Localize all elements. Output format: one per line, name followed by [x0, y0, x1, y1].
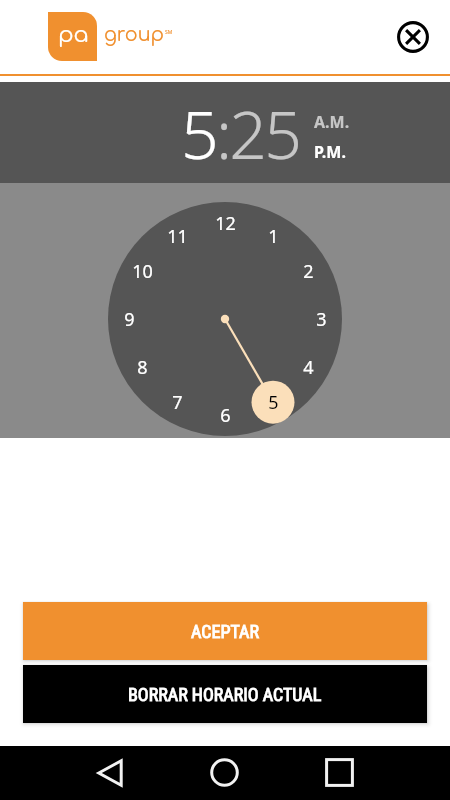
staticText: 9 [124, 307, 135, 331]
button[interactable]: A.M. [314, 111, 350, 133]
button[interactable]: 2 [292, 259, 324, 283]
button[interactable]: 1 [257, 224, 289, 248]
button[interactable]: 10 [126, 259, 158, 283]
staticText: 5 [268, 390, 279, 414]
button[interactable]: :25 [216, 88, 300, 178]
button[interactable]: 8 [126, 355, 158, 379]
staticText: 8 [137, 355, 148, 379]
button[interactable]: 5 [181, 88, 216, 178]
button[interactable]: 7 [161, 390, 193, 414]
staticText: 3 [316, 307, 327, 331]
staticText: :25 [216, 88, 300, 178]
staticText: BORRAR HORARIO ACTUAL [128, 684, 322, 705]
button[interactable]: Close [393, 17, 433, 57]
staticText: ACEPTAR [191, 621, 260, 642]
button[interactable]: Back [85, 748, 134, 797]
staticText: group [104, 24, 164, 45]
button[interactable]: 3 [305, 307, 337, 331]
staticText: 5 [181, 88, 216, 178]
staticText: 2 [303, 259, 314, 283]
button[interactable]: 4 [292, 355, 324, 379]
staticText: A.M. [314, 111, 350, 133]
button[interactable]: 11 [161, 224, 193, 248]
button[interactable]: 12 [209, 211, 241, 235]
button[interactable]: Home [200, 748, 249, 797]
button[interactable]: ACEPTAR [23, 602, 427, 660]
button[interactable]: Recents [315, 748, 364, 797]
staticText: 4 [303, 355, 314, 379]
staticText: 6 [220, 403, 231, 427]
staticText: 7 [172, 390, 183, 414]
button[interactable]: P.M. [314, 141, 346, 163]
staticText: P.M. [314, 141, 346, 163]
button[interactable]: 5 [257, 390, 289, 414]
button[interactable]: BORRAR HORARIO ACTUAL [23, 665, 427, 723]
staticText: 1 [268, 224, 279, 248]
button[interactable]: 6 [209, 403, 241, 427]
staticText: SM [165, 29, 173, 36]
staticText: 12 [215, 211, 236, 235]
staticText: 10 [132, 259, 153, 283]
button[interactable]: 9 [113, 307, 145, 331]
staticText: pa [58, 23, 89, 48]
staticText: 11 [167, 224, 188, 248]
